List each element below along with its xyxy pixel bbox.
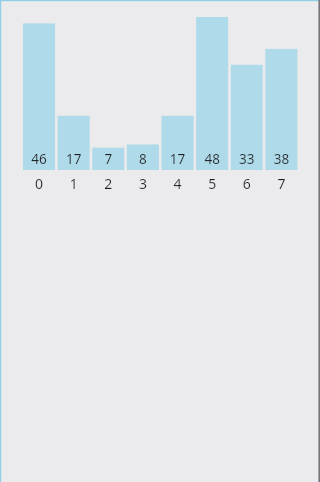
button[interactable]: Bar chart of eight values (0, 0, 320, 482)
